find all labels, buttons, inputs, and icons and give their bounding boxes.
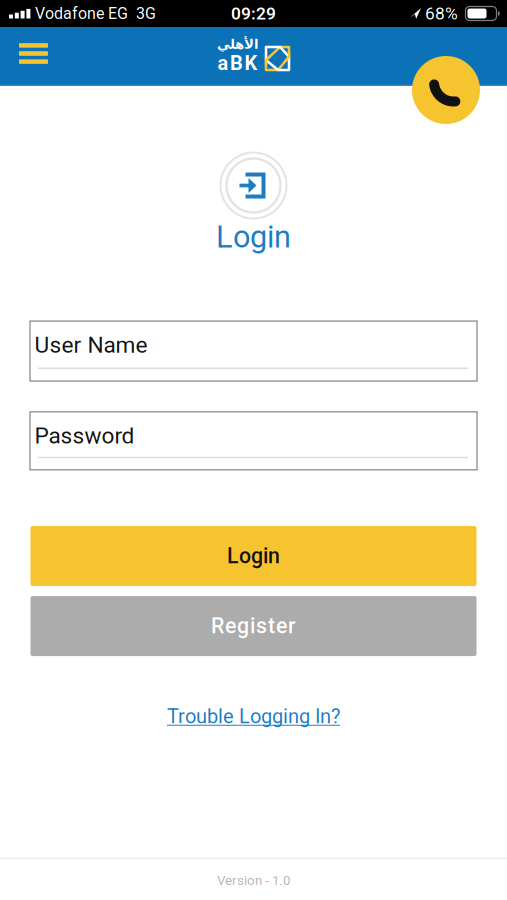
button[interactable]: Register [30,596,476,656]
staticText: Version - 1.0 [217,873,290,888]
staticText: B [230,52,243,74]
staticText: Trouble Logging In? [167,705,340,728]
staticText: a [217,52,228,74]
button[interactable]: Menu [0,29,48,84]
staticText: الأهلي [216,36,258,52]
staticText: Register [211,614,296,638]
staticText: Password [34,423,134,449]
staticText: Vodafone EG [35,4,128,23]
staticText: 3G [136,4,156,23]
button[interactable]: Password [30,412,477,470]
staticText: User Name [34,332,147,358]
button[interactable]: Call [412,56,480,124]
staticText: Login [227,544,280,568]
button[interactable]: Trouble Logging In? [167,705,340,728]
staticText: 09:29 [231,4,276,23]
button[interactable]: User Name [30,321,477,381]
button[interactable]: Login [30,526,476,586]
staticText: 68% [425,4,458,23]
staticText: Login [216,219,291,254]
staticText: K [245,52,258,74]
